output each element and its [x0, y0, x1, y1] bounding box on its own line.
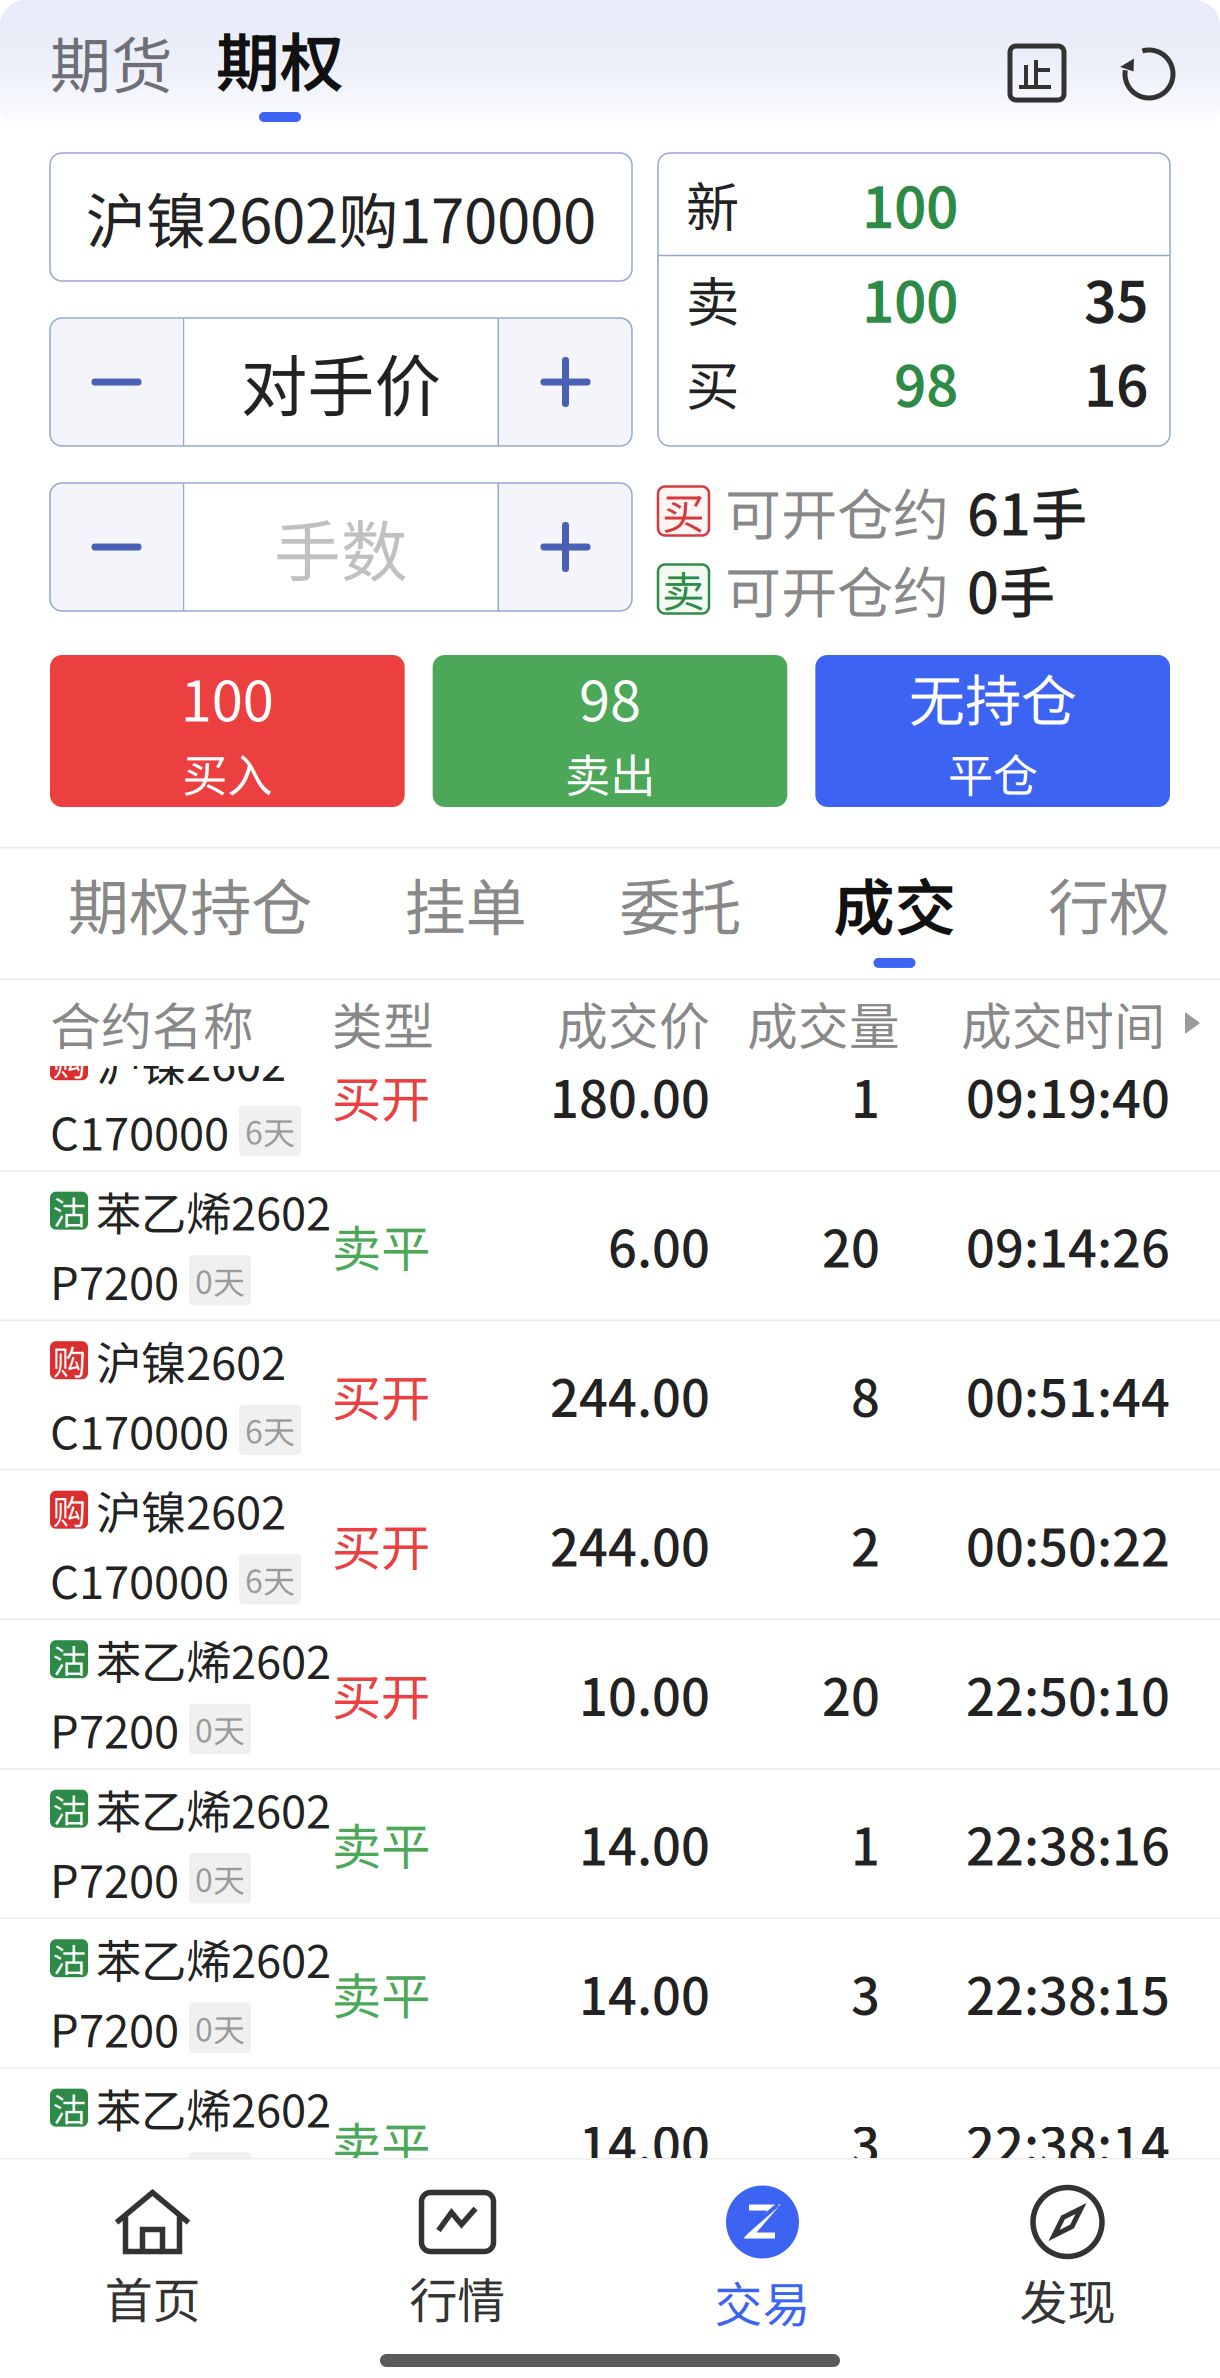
- staticText: 09:19:40: [966, 1059, 1170, 1133]
- staticText: 期权: [216, 12, 344, 105]
- button[interactable]: 首页: [0, 2189, 305, 2332]
- staticText: 100: [181, 657, 274, 738]
- staticText: 0天: [195, 1706, 245, 1752]
- staticText: 买开: [332, 1658, 430, 1730]
- staticText: 无持仓: [909, 657, 1077, 738]
- button[interactable]: 行权: [1048, 848, 1170, 978]
- button[interactable]: 沽: [0, 2068, 1220, 2218]
- staticText: 22:38:16: [966, 1807, 1170, 1880]
- staticText: 14.00: [579, 2106, 710, 2179]
- staticText: 沽: [52, 1186, 85, 1235]
- staticText: 2: [851, 1508, 880, 1581]
- staticText: 行情: [409, 2262, 505, 2332]
- staticText: 购: [52, 1485, 85, 1534]
- staticText: 6天: [245, 1556, 295, 1602]
- staticText: 对手价: [240, 334, 441, 430]
- staticText: 买开: [332, 1509, 430, 1580]
- staticText: 3: [851, 2106, 880, 2179]
- staticText: 20: [822, 1657, 880, 1731]
- staticText: 类型: [332, 986, 434, 1060]
- staticText: 35: [1084, 258, 1148, 339]
- staticText: 22:38:12: [966, 2255, 1170, 2329]
- staticText: 61手: [967, 470, 1087, 552]
- staticText: 买开: [332, 1359, 430, 1431]
- staticText: C170000: [50, 1546, 229, 1612]
- staticText: 0天: [195, 1855, 245, 1901]
- button[interactable]: 减少: [50, 483, 183, 611]
- staticText: 8: [851, 1358, 880, 1432]
- button[interactable]: 交易: [610, 2185, 915, 2336]
- staticText: 0天: [195, 2304, 245, 2350]
- staticText: 期权持仓: [68, 859, 312, 948]
- staticText: 0天: [195, 2005, 245, 2051]
- staticText: 16: [1084, 342, 1148, 423]
- button[interactable]: 委托: [619, 848, 741, 978]
- staticText: 22:38:14: [966, 2106, 1170, 2179]
- button[interactable]: 增加: [499, 483, 632, 611]
- button[interactable]: 增加: [499, 318, 632, 446]
- button[interactable]: 购: [0, 1022, 1220, 1171]
- button[interactable]: 购: [0, 1470, 1220, 1620]
- staticText: 00:51:44: [966, 1358, 1170, 1432]
- button[interactable]: 沽: [0, 2218, 1220, 2367]
- button[interactable]: 行情: [305, 2189, 610, 2332]
- staticText: 苯乙烯2602: [96, 1178, 331, 1243]
- button[interactable]: 沪镍2602购170000: [50, 153, 632, 281]
- staticText: 苯乙烯2602: [96, 1925, 331, 1991]
- staticText: 20: [822, 1209, 880, 1282]
- staticText: 100: [862, 258, 958, 339]
- staticText: 0天: [195, 1257, 245, 1303]
- staticText: 14.00: [579, 1956, 710, 2030]
- button[interactable]: 止损设置: [1008, 44, 1066, 132]
- staticText: 沪镍2602: [96, 1477, 286, 1542]
- staticText: P7200: [50, 2144, 179, 2210]
- button[interactable]: 98: [433, 655, 787, 807]
- staticText: 期货: [50, 17, 172, 106]
- staticText: P7200: [50, 1247, 179, 1313]
- staticText: 可开仓约: [725, 470, 949, 552]
- staticText: 0天: [195, 2154, 245, 2200]
- button[interactable]: 期权: [206, 12, 354, 132]
- staticText: 沪镍2602: [96, 1327, 286, 1393]
- staticText: 新: [686, 165, 739, 242]
- staticText: P7200: [50, 1995, 179, 2061]
- staticText: 委托: [619, 859, 741, 948]
- staticText: 购: [52, 1037, 85, 1085]
- button[interactable]: 沽: [0, 1620, 1220, 1769]
- staticText: 买: [686, 344, 739, 421]
- button[interactable]: 100: [50, 655, 405, 807]
- staticText: 244.00: [550, 1508, 710, 1581]
- staticText: 6天: [245, 1108, 295, 1154]
- staticText: 0手: [967, 548, 1055, 630]
- button[interactable]: 期货: [0, 17, 206, 132]
- staticText: 98: [579, 657, 641, 738]
- staticText: C170000: [50, 1098, 229, 1164]
- button[interactable]: 沽: [0, 1769, 1220, 1919]
- staticText: 沽: [52, 1635, 85, 1683]
- button[interactable]: 购: [0, 1321, 1220, 1470]
- staticText: P7200: [50, 1696, 179, 1762]
- staticText: 沪镍2602: [96, 1028, 286, 1094]
- staticText: 合约名称: [50, 986, 254, 1060]
- button[interactable]: 发现: [915, 2187, 1220, 2334]
- staticText: 1: [851, 1059, 880, 1133]
- staticText: 交易: [714, 2266, 810, 2336]
- staticText: 沽: [52, 1934, 85, 1982]
- staticText: 首页: [104, 2262, 200, 2332]
- button[interactable]: 沽: [0, 1919, 1220, 2068]
- staticText: 沽: [52, 1784, 85, 1833]
- button[interactable]: 沽: [0, 1171, 1220, 1321]
- button[interactable]: 刷新: [1120, 44, 1178, 132]
- staticText: 手数: [274, 499, 408, 595]
- button[interactable]: 期权持仓: [68, 848, 312, 978]
- staticText: 苯乙烯2602: [96, 1776, 331, 1841]
- staticText: P7200: [50, 2294, 179, 2360]
- staticText: 00:50:22: [966, 1508, 1170, 1581]
- staticText: 10.00: [579, 1657, 710, 1731]
- button[interactable]: 成交: [833, 848, 955, 978]
- button[interactable]: 挂单: [404, 848, 526, 978]
- button[interactable]: 无持仓: [815, 655, 1170, 807]
- button[interactable]: 减少: [50, 318, 183, 446]
